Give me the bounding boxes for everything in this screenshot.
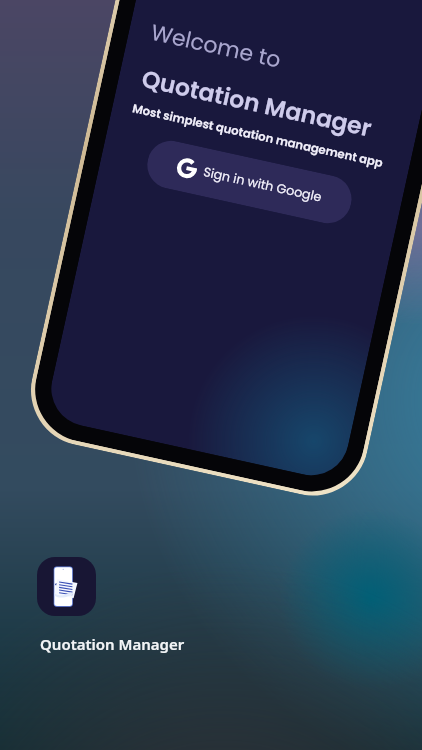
- staticText: Welcome to: [148, 17, 285, 76]
- staticText: Quotation Manager: [40, 634, 185, 654]
- staticText: Most simplest quotation management app: [131, 100, 385, 171]
- staticText: Sign in with Google: [202, 163, 324, 207]
- button[interactable]: Quotation Manager app icon: [37, 557, 96, 616]
- button[interactable]: Sign in with Google: [143, 136, 356, 228]
- staticText: Quotation Manager: [139, 62, 375, 145]
